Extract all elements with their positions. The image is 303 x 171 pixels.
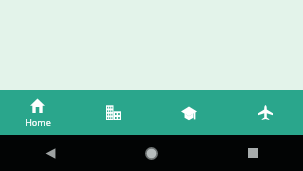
button[interactable]: Flights — [227, 90, 303, 135]
button[interactable]: Business — [75, 90, 151, 135]
staticText: Home — [25, 116, 51, 128]
button[interactable]: Home — [101, 135, 202, 171]
button[interactable]: Back — [0, 135, 101, 171]
button[interactable]: Recent apps — [202, 135, 303, 171]
button[interactable]: School — [151, 90, 227, 135]
button[interactable]: Home — [0, 90, 75, 135]
